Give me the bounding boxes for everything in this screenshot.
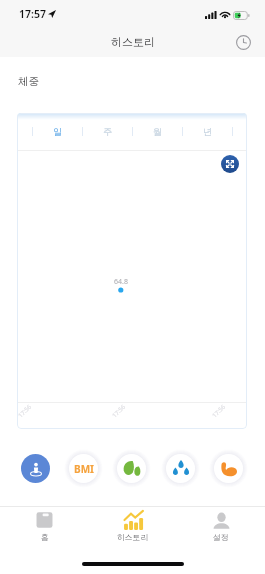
- staticText: 17:57: [19, 7, 46, 21]
- button[interactable]: Body fat: [114, 451, 149, 486]
- staticText: 히스토리: [111, 35, 155, 49]
- staticText: 체중: [18, 75, 39, 88]
- button[interactable]: 히스토리: [89, 507, 177, 543]
- staticText: 월: [153, 126, 162, 137]
- button[interactable]: 주: [83, 113, 132, 150]
- button[interactable]: 일: [33, 113, 82, 150]
- staticText: 설정: [213, 532, 229, 542]
- staticText: 64.8: [114, 277, 128, 287]
- staticText: 일: [53, 126, 62, 137]
- staticText: 주: [103, 126, 112, 137]
- button[interactable]: Water: [163, 451, 198, 486]
- staticText: 홈: [41, 532, 49, 542]
- staticText: 17:56: [110, 402, 127, 419]
- button[interactable]: Weight: [21, 454, 50, 483]
- staticText: 히스토리: [117, 532, 149, 542]
- button[interactable]: History: [231, 30, 255, 54]
- button[interactable]: 설정: [177, 507, 265, 543]
- button[interactable]: Fullscreen: [221, 155, 239, 173]
- button[interactable]: 년: [183, 113, 232, 150]
- staticText: BMI: [74, 462, 94, 476]
- button[interactable]: Muscle: [211, 451, 246, 486]
- button[interactable]: BMI: [66, 451, 101, 486]
- button[interactable]: 월: [133, 113, 182, 150]
- button[interactable]: 홈: [0, 507, 89, 543]
- staticText: 17:56: [210, 402, 227, 419]
- staticText: 17:56: [17, 402, 33, 419]
- staticText: 년: [203, 126, 212, 137]
